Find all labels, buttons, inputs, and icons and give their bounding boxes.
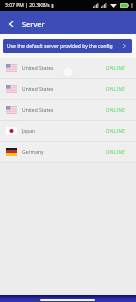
button[interactable]: Germany bbox=[0, 142, 136, 162]
button[interactable]: Japan bbox=[0, 121, 136, 141]
staticText: ONLINE bbox=[106, 128, 126, 134]
staticText: Germany bbox=[22, 149, 44, 156]
staticText: ONLINE bbox=[106, 65, 126, 71]
staticText: United States bbox=[22, 65, 54, 72]
staticText: Japan bbox=[22, 128, 36, 135]
staticText: Server bbox=[22, 19, 45, 29]
button[interactable]: United States bbox=[0, 58, 136, 78]
staticText: United States bbox=[22, 86, 54, 93]
staticText: ONLINE bbox=[106, 86, 126, 92]
button[interactable]: Back bbox=[0, 11, 21, 34]
staticText: Use the default server provided by the c… bbox=[7, 43, 113, 50]
button[interactable]: Use the default server provided by the c… bbox=[3, 39, 132, 53]
button[interactable]: United States bbox=[0, 79, 136, 99]
staticText: 3:07 PM | 20.3KB/s bbox=[5, 2, 50, 9]
button[interactable]: United States bbox=[0, 100, 136, 120]
staticText: United States bbox=[22, 107, 54, 114]
staticText: ONLINE bbox=[106, 149, 126, 155]
staticText: ONLINE bbox=[106, 107, 126, 113]
